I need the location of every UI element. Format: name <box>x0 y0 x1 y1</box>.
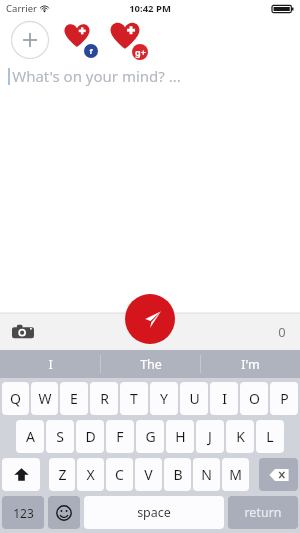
staticText: Y <box>160 389 168 408</box>
staticText: N <box>201 465 212 484</box>
button[interactable]: R <box>90 382 118 415</box>
button[interactable]: H <box>166 420 194 453</box>
button[interactable]: D <box>76 420 104 453</box>
staticText: D <box>85 427 96 446</box>
button[interactable]: O <box>240 382 268 415</box>
button[interactable]: C <box>106 458 133 491</box>
staticText: P <box>280 389 289 408</box>
button[interactable]: V <box>135 458 162 491</box>
button[interactable]: T <box>120 382 148 415</box>
button[interactable]: space <box>84 496 224 529</box>
button[interactable]: L <box>256 420 284 453</box>
staticText: C <box>115 465 124 484</box>
button[interactable]: I'm <box>201 350 300 378</box>
button[interactable]: Y <box>150 382 178 415</box>
button[interactable]: Add <box>10 20 50 60</box>
staticText: H <box>175 427 186 446</box>
button[interactable]: P <box>270 382 298 415</box>
staticText: A <box>26 427 35 446</box>
button[interactable]: I <box>210 382 238 415</box>
staticText: E <box>70 389 78 408</box>
button[interactable]: N <box>193 458 220 491</box>
staticText: f <box>89 46 93 57</box>
staticText: M <box>229 465 242 484</box>
button[interactable]: Share to Facebook <box>64 22 98 58</box>
staticText: Z <box>58 465 67 484</box>
button[interactable]: W <box>31 382 58 415</box>
button[interactable]: return <box>228 496 298 529</box>
button[interactable]: A <box>16 420 44 453</box>
staticText: G <box>145 427 156 446</box>
staticText: I <box>222 389 227 408</box>
staticText: F <box>116 427 124 446</box>
staticText: Q <box>10 389 21 408</box>
button[interactable]: Q <box>2 382 29 415</box>
staticText: space <box>137 504 171 521</box>
staticText: B <box>173 465 183 484</box>
button[interactable]: S <box>46 420 74 453</box>
staticText: 123 <box>13 505 34 521</box>
staticText: K <box>236 427 245 446</box>
button[interactable]: J <box>196 420 224 453</box>
button[interactable]: Camera <box>10 319 36 345</box>
staticText: L <box>266 427 274 446</box>
staticText: V <box>144 465 153 484</box>
staticText: g+ <box>135 46 146 58</box>
staticText: I <box>48 356 53 373</box>
staticText: X <box>86 465 95 484</box>
button[interactable]: U <box>180 382 208 415</box>
button[interactable]: Z <box>49 458 75 491</box>
button[interactable]: Share to Google Plus <box>110 20 148 60</box>
button[interactable]: E <box>60 382 88 415</box>
staticText: 0 <box>278 323 286 341</box>
button[interactable]: Backspace <box>259 458 298 491</box>
button[interactable]: Emoji <box>48 496 80 529</box>
staticText: U <box>189 389 200 408</box>
button[interactable]: M <box>222 458 249 491</box>
staticText: R <box>100 389 109 408</box>
button[interactable]: Shift <box>2 458 40 491</box>
button[interactable]: F <box>106 420 134 453</box>
staticText: The <box>140 356 162 373</box>
staticText: O <box>249 389 260 408</box>
button[interactable]: The <box>101 350 200 378</box>
button[interactable]: K <box>226 420 254 453</box>
staticText: S <box>56 427 64 446</box>
staticText: I'm <box>241 356 260 373</box>
button[interactable]: X <box>77 458 104 491</box>
button[interactable]: B <box>164 458 191 491</box>
staticText: return <box>244 504 282 521</box>
staticText: J <box>208 427 212 446</box>
staticText: T <box>130 389 138 408</box>
staticText: Carrier <box>6 2 37 15</box>
button[interactable]: Send <box>125 294 175 344</box>
staticText: 10:42 PM <box>129 2 171 15</box>
button[interactable]: G <box>136 420 164 453</box>
staticText: W <box>38 389 52 408</box>
button[interactable]: 123 <box>2 496 44 529</box>
button[interactable]: I <box>0 350 100 378</box>
staticText: What's on your mind? ... <box>12 66 181 86</box>
